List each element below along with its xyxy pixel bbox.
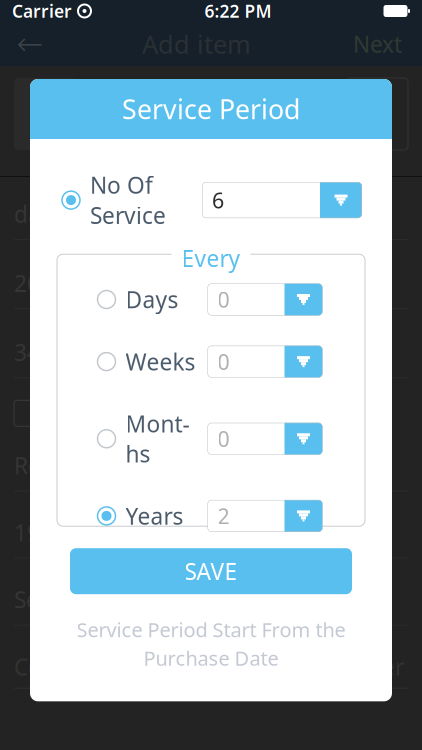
button[interactable]: Select value	[202, 182, 362, 218]
staticText: Days	[125, 284, 178, 314]
button[interactable]: Select value	[207, 423, 322, 455]
staticText: Contact Number	[228, 652, 404, 682]
staticText: 6:22 PM	[204, 0, 271, 22]
button[interactable]: Select value	[207, 346, 322, 378]
staticText: Contact Name	[14, 652, 166, 682]
button[interactable]: Days	[97, 280, 207, 318]
staticText: No Of Service	[90, 170, 166, 230]
staticText: 2	[217, 502, 229, 530]
button[interactable]: No Of Service	[62, 164, 166, 236]
staticText: Years	[125, 501, 183, 531]
staticText: Service Period	[122, 91, 300, 127]
staticText: Purchase Date	[143, 645, 278, 671]
staticText: 1985	[14, 517, 66, 547]
staticText: Weeks	[125, 347, 195, 377]
button[interactable]: Next	[341, 22, 414, 66]
staticText: Reminder	[14, 450, 118, 480]
staticText: 0	[217, 285, 229, 314]
staticText: 2014	[14, 268, 66, 298]
button[interactable]: Months	[97, 405, 207, 473]
staticText: 6	[212, 186, 224, 214]
staticText: SAVE	[184, 556, 237, 586]
staticText: Service	[14, 584, 90, 615]
staticText: 0	[217, 425, 229, 453]
staticText: Every	[181, 243, 240, 273]
staticText: ←	[16, 26, 43, 62]
button[interactable]: Select value	[207, 283, 322, 315]
staticText: 3456	[14, 337, 66, 367]
button[interactable]: SAVE	[70, 548, 352, 594]
button[interactable]: Weeks	[97, 343, 207, 381]
staticText: Carrier	[12, 0, 72, 22]
staticText: date of purchase	[14, 199, 195, 229]
staticText: Next	[353, 29, 402, 59]
button[interactable]: Years	[97, 497, 207, 535]
staticText: Service Period Start From the	[76, 616, 345, 643]
staticText: Add item	[142, 27, 251, 61]
button[interactable]: Back	[8, 22, 52, 66]
button[interactable]: Select value	[207, 500, 322, 532]
staticText: 0	[217, 347, 229, 376]
staticText: Months	[125, 409, 189, 469]
